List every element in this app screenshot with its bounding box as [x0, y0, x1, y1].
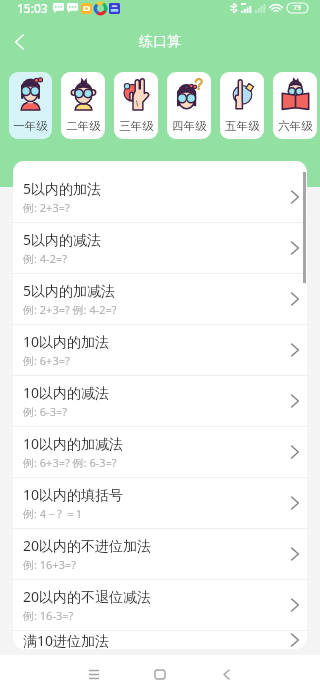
staticText: 满10进位加法	[23, 631, 110, 649]
button[interactable]: 20以内的不进位加法	[13, 529, 307, 579]
staticText: 5以内的加减法	[23, 281, 116, 300]
staticText: 例: 16+3=?	[23, 557, 77, 572]
button[interactable]: Back	[205, 655, 247, 693]
button[interactable]: 5以内的加减法	[13, 274, 307, 324]
button[interactable]: 10以内的填括号	[13, 478, 307, 528]
button[interactable]: 四年级	[167, 72, 211, 139]
button[interactable]: 满10进位加法	[13, 631, 307, 649]
staticText: 例: 2+3=? 例: 4-2=?	[23, 302, 117, 317]
button[interactable]: 三年级	[114, 72, 158, 139]
staticText: 六年级	[278, 119, 313, 133]
button[interactable]: 10以内的加减法	[13, 427, 307, 477]
button[interactable]: 一年级	[9, 72, 52, 139]
staticText: 例: 6+3=? 例: 6-3=?	[23, 455, 117, 470]
staticText: 15:03	[17, 0, 48, 16]
button[interactable]: 二年级	[61, 72, 105, 139]
staticText: 10以内的减法	[23, 383, 110, 402]
staticText: 79	[293, 3, 302, 13]
staticText: 10以内的加法	[23, 332, 110, 351]
button[interactable]: 5以内的加法	[13, 172, 307, 222]
button[interactable]: Home	[139, 655, 181, 693]
staticText: 5以内的减法	[23, 230, 102, 249]
staticText: 五年级	[225, 119, 260, 133]
staticText: 练口算	[139, 33, 181, 51]
staticText: 例: 6-3=?	[23, 404, 67, 419]
staticText: 20以内的不进位加法	[23, 536, 152, 555]
staticText: 例: 6+3=?	[23, 353, 70, 368]
staticText: 例: 16-3=?	[23, 608, 74, 623]
button[interactable]: 五年级	[220, 72, 264, 139]
staticText: 例: 4-2=?	[23, 251, 67, 266]
button[interactable]: 六年级	[273, 72, 317, 139]
staticText: 例: 4－? ＝1	[23, 506, 83, 521]
button[interactable]: 20以内的不退位减法	[13, 580, 307, 630]
staticText: 四年级	[172, 119, 207, 133]
staticText: 例: 2+3=?	[23, 200, 70, 215]
button[interactable]: 5以内的减法	[13, 223, 307, 273]
staticText: 5以内的加法	[23, 179, 102, 198]
staticText: 20以内的不退位减法	[23, 587, 152, 606]
button[interactable]: Recent apps	[73, 655, 115, 693]
staticText: 二年级	[66, 119, 101, 133]
button[interactable]: 10以内的加法	[13, 325, 307, 375]
staticText: 10以内的填括号	[23, 485, 124, 504]
button[interactable]: Back	[6, 29, 32, 55]
staticText: 10以内的加减法	[23, 434, 124, 453]
button[interactable]: 10以内的减法	[13, 376, 307, 426]
staticText: 三年级	[119, 119, 154, 133]
staticText: 一年级	[13, 119, 48, 133]
